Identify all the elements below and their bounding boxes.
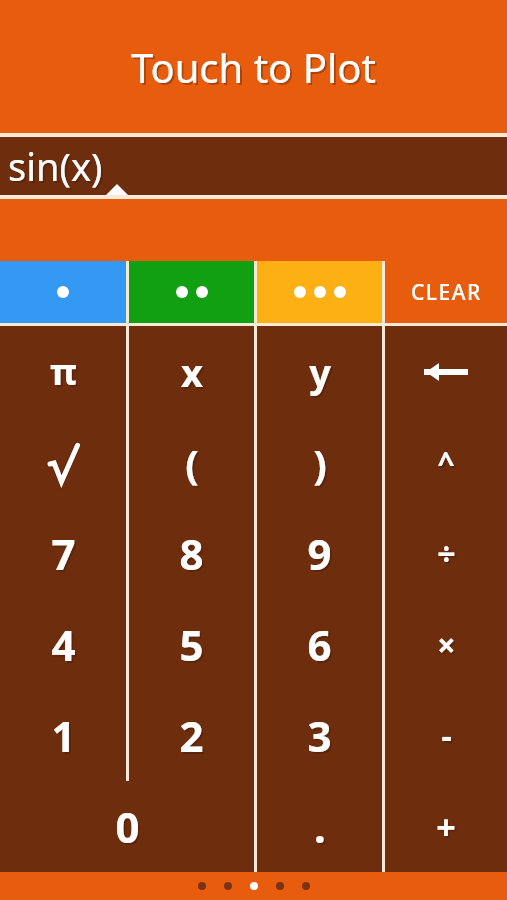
staticText: 3 [309, 709, 334, 766]
staticText: Touch to Plot [131, 40, 376, 94]
button[interactable]: y [257, 326, 382, 417]
staticText: x [181, 346, 203, 398]
staticText: 9 [309, 527, 334, 584]
staticText: 0 [115, 798, 140, 855]
staticText: ^ [437, 442, 455, 483]
staticText: 3 [307, 707, 332, 764]
staticText: ) [315, 438, 329, 492]
button[interactable]: 8 [129, 508, 254, 599]
button[interactable]: Square root [0, 417, 126, 508]
button[interactable]: x [129, 326, 254, 417]
button[interactable]: - [385, 690, 507, 781]
button[interactable]: . [257, 781, 382, 872]
staticText: 2 [179, 707, 204, 764]
staticText: . [316, 800, 328, 857]
staticText: 4 [53, 618, 78, 675]
button[interactable]: 2 [129, 690, 254, 781]
staticText: ÷ [437, 532, 456, 576]
staticText: ( [185, 436, 199, 490]
button[interactable]: 9 [257, 508, 382, 599]
staticText: CLEAR [411, 278, 482, 307]
staticText: - [443, 716, 454, 760]
staticText: 7 [51, 525, 76, 582]
staticText: y [309, 346, 331, 398]
staticText: 6 [307, 616, 332, 673]
button[interactable]: ( [129, 417, 254, 508]
button[interactable]: Plot style 1 [0, 261, 126, 323]
staticText: + [436, 804, 456, 850]
staticText: + [438, 806, 458, 852]
staticText: 1 [53, 709, 78, 766]
button[interactable]: sin(x) [0, 137, 507, 195]
staticText: 4 [51, 616, 76, 673]
staticText: ) [313, 436, 327, 490]
staticText: y [311, 348, 333, 400]
staticText: sin(x) [10, 142, 105, 194]
button[interactable]: ) [257, 417, 382, 508]
button[interactable]: 1 [0, 690, 126, 781]
staticText: ÷ [439, 534, 458, 578]
staticText: 6 [309, 618, 334, 675]
button[interactable]: + [385, 781, 507, 872]
button[interactable]: 3 [257, 690, 382, 781]
button[interactable]: 6 [257, 599, 382, 690]
button[interactable]: ÷ [385, 508, 507, 599]
button[interactable]: Backspace [385, 326, 507, 417]
staticText: × [437, 623, 456, 667]
staticText: × [439, 625, 458, 669]
staticText: 5 [179, 616, 204, 673]
staticText: 8 [181, 527, 206, 584]
button[interactable]: 0 [0, 781, 254, 872]
staticText: π [50, 347, 77, 396]
button[interactable]: ^ [385, 417, 507, 508]
staticText: - [441, 714, 452, 758]
staticText: . [314, 798, 326, 855]
staticText: 7 [53, 527, 78, 584]
button[interactable]: Plot style 3 [257, 261, 382, 323]
staticText: 2 [181, 709, 206, 766]
staticText: 0 [117, 800, 142, 857]
button[interactable]: Plot style 2 [129, 261, 254, 323]
staticText: π [52, 349, 79, 398]
staticText: 9 [307, 525, 332, 582]
staticText: x [183, 348, 205, 400]
staticText: 1 [51, 707, 76, 764]
staticText: 5 [181, 618, 206, 675]
staticText: sin(x) [8, 140, 103, 192]
button[interactable]: 5 [129, 599, 254, 690]
button[interactable]: CLEAR [385, 261, 507, 323]
staticText: ( [187, 438, 201, 492]
button[interactable]: 4 [0, 599, 126, 690]
button[interactable]: π [0, 326, 126, 417]
button[interactable]: 7 [0, 508, 126, 599]
staticText: ^ [439, 444, 457, 485]
button[interactable]: × [385, 599, 507, 690]
staticText: 8 [179, 525, 204, 582]
staticText: Touch to Plot [133, 42, 378, 96]
button[interactable]: Touch to Plot [0, 0, 507, 133]
